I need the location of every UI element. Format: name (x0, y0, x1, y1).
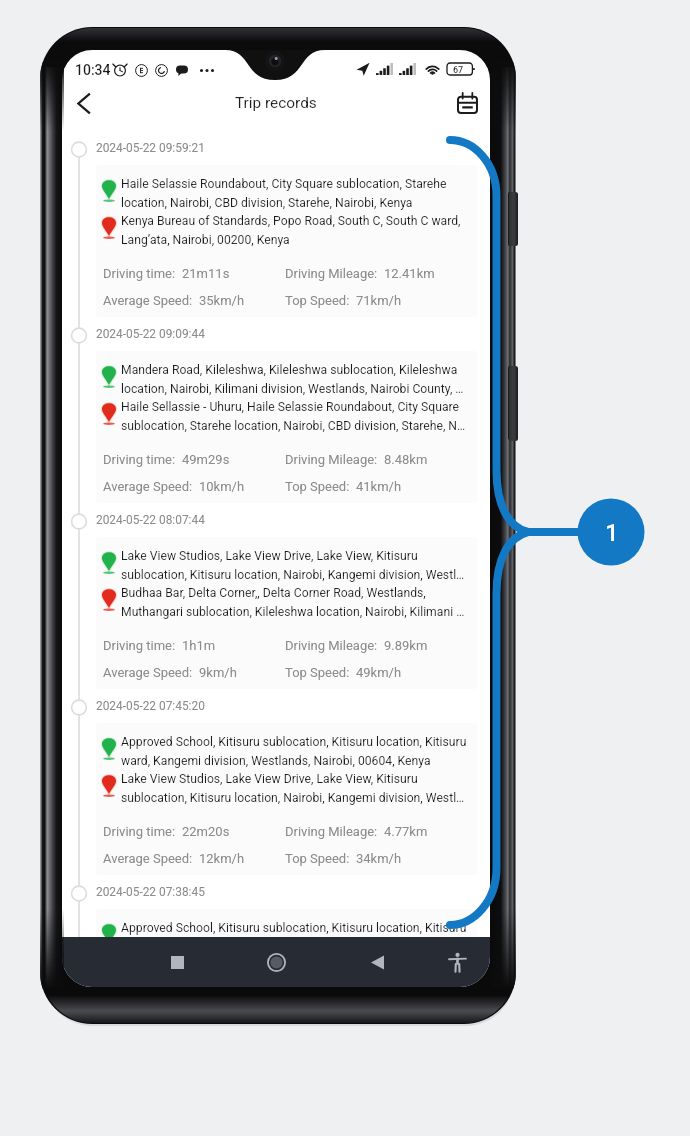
staticText: Approved School, Kitisuru sublocation, K… (121, 921, 469, 937)
button[interactable]: 2024-05-22 08:07:44 (62, 492, 490, 678)
staticText: Driving Mileage: (285, 824, 378, 839)
staticText: Top Speed: (285, 479, 350, 494)
staticText: Driving time: (103, 452, 176, 467)
staticText: 21m11s (182, 266, 230, 281)
staticText: Driving Mileage: (285, 638, 378, 653)
staticText: 2024-05-22 09:09:44 (96, 327, 205, 341)
staticText: Haile Selassie Roundabout, City Square s… (121, 177, 469, 210)
staticText: Average Speed: (103, 665, 193, 680)
staticText: 67 (453, 65, 464, 76)
staticText: Mandera Road, Kileleshwa, Kileleshwa sub… (121, 363, 469, 396)
button[interactable]: Home (254, 940, 298, 984)
staticText: 49km/h (356, 665, 402, 680)
button[interactable]: 2024-05-22 09:09:44 (62, 306, 490, 492)
staticText: 22m20s (182, 824, 230, 839)
staticText: Kenya Bureau of Standards, Popo Road, So… (121, 214, 469, 247)
staticText: Trip records (235, 94, 317, 112)
staticText: Average Speed: (103, 293, 193, 308)
button[interactable]: Annotation marker 1 (578, 499, 645, 566)
staticText: 8.48km (384, 452, 428, 467)
staticText: Average Speed: (103, 851, 193, 866)
staticText: 41km/h (356, 479, 402, 494)
staticText: 10:34 (75, 62, 111, 78)
staticText: 71km/h (356, 293, 402, 308)
staticText: Driving time: (103, 638, 176, 653)
staticText: Average Speed: (103, 479, 193, 494)
button[interactable]: Accessibility (435, 940, 479, 984)
button[interactable]: 2024-05-22 07:45:20 (62, 678, 490, 864)
staticText: 34km/h (356, 851, 402, 866)
staticText: 49m29s (182, 452, 230, 467)
staticText: 12km/h (199, 851, 245, 866)
staticText: Top Speed: (285, 851, 350, 866)
staticText: 9.89km (384, 638, 428, 653)
staticText: 12.41km (384, 266, 435, 281)
button[interactable]: 2024-05-22 09:59:21 (62, 120, 490, 306)
button[interactable]: Back (65, 86, 103, 120)
staticText: Approved School, Kitisuru sublocation, K… (121, 735, 469, 768)
button[interactable]: Select date (448, 86, 486, 120)
staticText: Top Speed: (285, 665, 350, 680)
staticText: Driving Mileage: (285, 266, 378, 281)
button[interactable]: Recent apps (155, 940, 199, 984)
button[interactable]: 2024-05-22 07:38:45 (62, 864, 490, 937)
staticText: 4.77km (384, 824, 428, 839)
staticText: Budhaa Bar, Delta Corner,, Delta Corner … (121, 586, 469, 619)
staticText: 2024-05-22 08:07:44 (96, 513, 205, 527)
staticText: Driving Mileage: (285, 452, 378, 467)
staticText: Lake View Studios, Lake View Drive, Lake… (121, 549, 469, 582)
staticText: 9km/h (199, 665, 237, 680)
staticText: 1 (605, 519, 619, 547)
staticText: 2024-05-22 09:59:21 (96, 141, 205, 155)
staticText: Lake View Studios, Lake View Drive, Lake… (121, 772, 469, 805)
staticText: 35km/h (199, 293, 245, 308)
button[interactable]: Back (355, 940, 399, 984)
staticText: 2024-05-22 07:45:20 (96, 699, 205, 713)
staticText: 10km/h (199, 479, 245, 494)
staticText: Top Speed: (285, 293, 350, 308)
staticText: Haile Sellassie - Uhuru, Haile Selassie … (121, 400, 469, 433)
staticText: Driving time: (103, 824, 176, 839)
staticText: 2024-05-22 07:38:45 (96, 885, 205, 899)
staticText: 1h1m (182, 638, 216, 653)
staticText: Driving time: (103, 266, 176, 281)
